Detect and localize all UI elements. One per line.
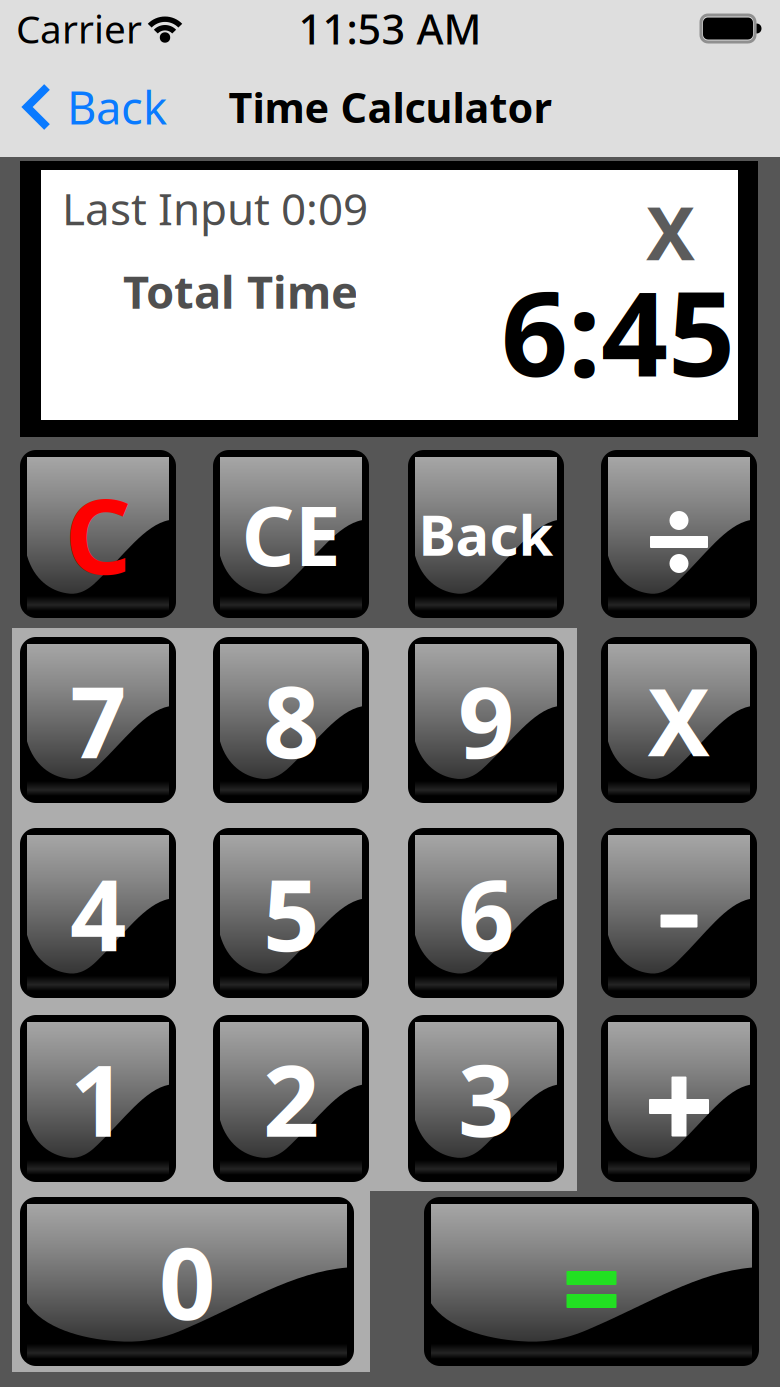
button[interactable]: 7 — [20, 637, 176, 803]
staticText: Time Calculator — [228, 80, 551, 134]
button[interactable]: Equals — [424, 1197, 759, 1366]
staticText: Back — [67, 77, 167, 137]
staticText: 7 — [70, 654, 126, 785]
staticText: 4 — [70, 847, 126, 978]
button[interactable]: 6 — [408, 828, 564, 998]
button[interactable]: 4 — [20, 828, 176, 998]
staticText: 3 — [458, 1033, 514, 1164]
button[interactable]: 5 — [213, 828, 369, 998]
button[interactable]: 0 — [20, 1197, 354, 1366]
button[interactable]: Multiply — [601, 637, 757, 803]
staticText: CE — [241, 479, 340, 589]
staticText: 11:53 AM — [298, 1, 481, 56]
staticText: Last Input 0:09 — [62, 179, 368, 237]
staticText: 0 — [159, 1216, 215, 1347]
button[interactable]: Minus — [601, 828, 757, 998]
button[interactable]: 3 — [408, 1015, 564, 1182]
staticText: 6 — [458, 847, 514, 978]
button[interactable]: Plus — [601, 1015, 757, 1182]
button[interactable]: CE — [213, 450, 369, 618]
staticText: 1 — [70, 1033, 126, 1164]
button[interactable]: C — [20, 450, 176, 618]
button[interactable]: Back — [408, 450, 564, 618]
button[interactable]: Divide — [601, 450, 757, 618]
staticText: 9 — [458, 654, 514, 785]
staticText: Carrier — [16, 3, 142, 54]
staticText: X — [647, 658, 710, 782]
button[interactable]: Back — [0, 65, 179, 149]
staticText: X — [646, 183, 695, 280]
staticText: Back — [418, 497, 553, 571]
staticText: C — [64, 465, 131, 603]
button[interactable]: 9 — [408, 637, 564, 803]
staticText: 5 — [263, 847, 319, 978]
staticText: 8 — [263, 654, 319, 785]
button[interactable]: 1 — [20, 1015, 176, 1182]
staticText: 2 — [263, 1033, 319, 1164]
button[interactable]: 8 — [213, 637, 369, 803]
button[interactable]: 2 — [213, 1015, 369, 1182]
staticText: Total Time — [123, 261, 358, 321]
staticText: 6:45 — [501, 253, 735, 409]
